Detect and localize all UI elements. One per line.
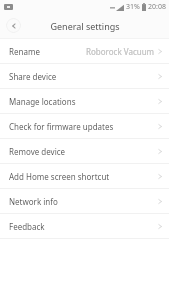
button[interactable]: Feedback — [0, 214, 169, 238]
staticText: Check for firmware updates — [9, 121, 114, 132]
button[interactable]: Check for firmware updates — [0, 114, 169, 138]
button[interactable]: Remove device — [0, 139, 169, 163]
staticText: Feedback — [9, 221, 45, 232]
staticText: Share device — [9, 71, 57, 82]
button[interactable]: Network info — [0, 189, 169, 213]
staticText: Manage locations — [9, 96, 76, 107]
staticText: Roborock Vacuum — [86, 46, 155, 57]
button[interactable]: Share device — [0, 64, 169, 88]
button[interactable]: Manage locations — [0, 89, 169, 113]
staticText: 20:08 — [148, 2, 166, 12]
button[interactable]: Rename — [0, 39, 169, 63]
button[interactable]: Back — [6, 18, 21, 33]
button[interactable]: Add Home screen shortcut — [0, 164, 169, 188]
staticText: Network info — [9, 196, 58, 207]
staticText: Add Home screen shortcut — [9, 171, 110, 182]
staticText: General settings — [50, 20, 120, 32]
staticText: Rename — [9, 46, 40, 57]
staticText: Remove device — [9, 146, 66, 157]
staticText: 31% — [126, 2, 140, 12]
